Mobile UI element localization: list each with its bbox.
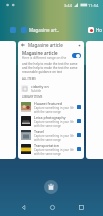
staticText: and the help to make the text the same s… [22, 66, 80, 70]
button[interactable]: Previous app [0, 41, 16, 159]
staticText: Huawei featured [34, 101, 63, 106]
button[interactable]: Recent apps [74, 200, 88, 214]
staticText: cidarity on [31, 84, 49, 89]
button[interactable]: Huawei featured [21, 100, 81, 114]
button[interactable]: Action [77, 105, 81, 109]
button[interactable]: cidarity on [21, 82, 81, 94]
button[interactable]: Home [45, 200, 59, 214]
staticText: Transportation [34, 143, 59, 148]
button[interactable]: Action [77, 119, 81, 123]
staticText: Capture something in your life [34, 106, 74, 110]
staticText: Magasine article [28, 42, 63, 48]
staticText: Leica photography [34, 115, 66, 120]
button[interactable]: Magasine article [18, 41, 84, 159]
staticText: 3:44 [64, 3, 72, 8]
staticText: Capture something in your life [34, 148, 74, 152]
button[interactable]: Next app [86, 41, 103, 159]
staticText: Ho [96, 27, 103, 33]
staticText: Capture something in your life [34, 134, 74, 138]
staticText: Here is different range on the font [22, 56, 70, 60]
staticText: ALL ITEMS [22, 77, 36, 81]
button[interactable]: Transportation [21, 142, 81, 156]
staticText: with the same range [34, 152, 61, 156]
button[interactable]: Clear all [44, 180, 58, 194]
button[interactable]: Travel [21, 128, 81, 142]
staticText: Magasine article [22, 50, 58, 56]
staticText: Subtitle [31, 89, 42, 93]
staticText: Capture something in your life [34, 120, 74, 124]
button[interactable]: Toggle [72, 53, 81, 58]
staticText: with the same range [34, 124, 61, 128]
staticText: reasonable guidance on text [22, 70, 63, 74]
staticText: with the same range [34, 110, 61, 114]
button[interactable]: Back [16, 200, 30, 214]
staticText: and the help to make the text the same s… [22, 62, 80, 66]
button[interactable]: Action [77, 147, 81, 151]
staticText: with the same range [34, 138, 61, 142]
button[interactable]: Action [77, 133, 81, 137]
button[interactable]: Leica photography [21, 114, 81, 128]
staticText: 11:54 [88, 3, 99, 8]
staticText: Magasine art.. [29, 27, 60, 33]
staticText: LIBRARY ITEMS [22, 95, 43, 99]
staticText: Travel [34, 129, 45, 134]
